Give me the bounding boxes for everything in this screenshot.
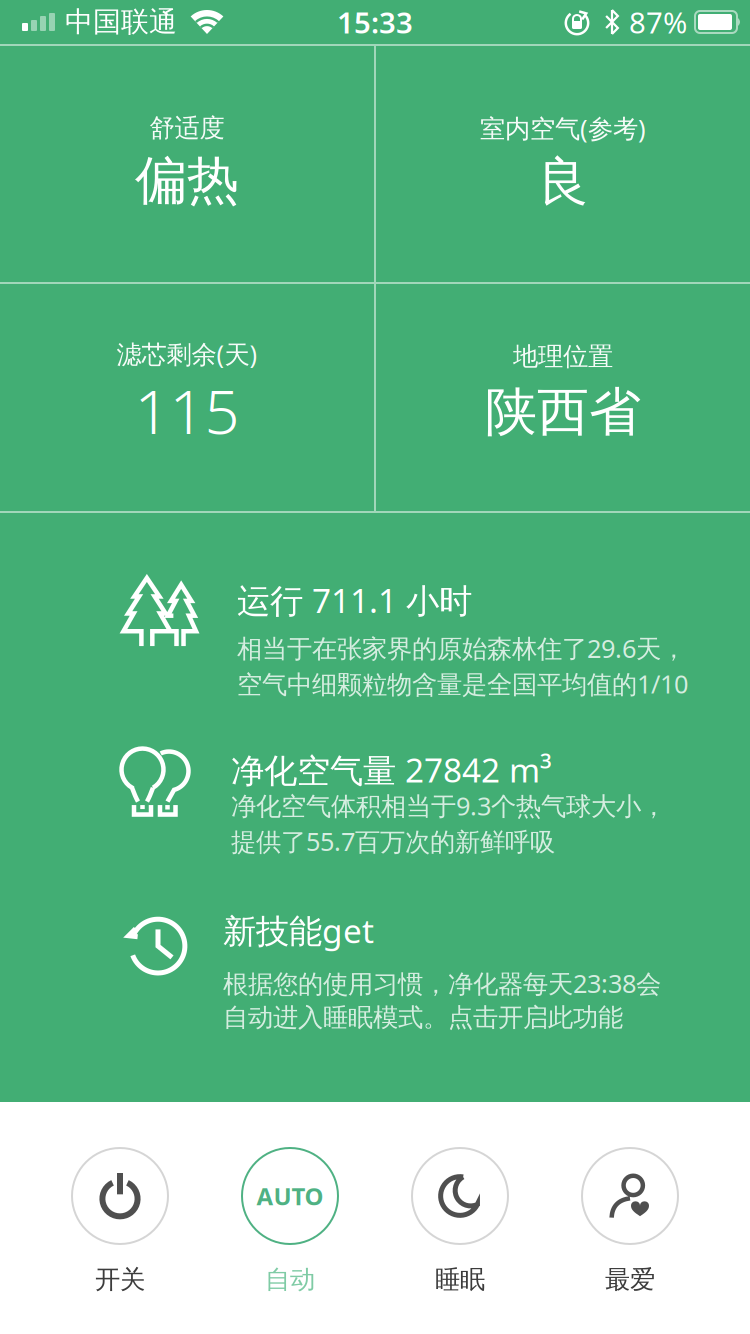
button[interactable]: 自动 xyxy=(205,1148,375,1295)
staticText: 舒适度 xyxy=(149,112,224,144)
button[interactable]: 开关 xyxy=(35,1148,205,1295)
button[interactable]: 睡眠 xyxy=(375,1148,545,1295)
staticText: 陕西省 xyxy=(485,380,641,444)
staticText: 115 xyxy=(134,370,239,451)
staticText: 新技能get xyxy=(223,908,374,952)
button[interactable]: 最爱 xyxy=(545,1148,715,1295)
button[interactable]: 新技能get xyxy=(0,908,750,1028)
staticText: AUTO xyxy=(256,1180,323,1212)
staticText: 15:33 xyxy=(337,2,413,41)
staticText: 开关 xyxy=(95,1264,145,1295)
staticText: 偏热 xyxy=(135,149,239,212)
staticText: 净化空气量 27842 m³ xyxy=(231,747,552,792)
staticText: 地理位置 xyxy=(513,341,613,372)
staticText: 最爱 xyxy=(605,1264,655,1295)
staticText: 相当于在张家界的原始森林住了29.6天， 空气中细颗粒物含量是全国平均值的1/1… xyxy=(237,631,688,701)
staticText: 滤芯剩余(天) xyxy=(116,337,257,371)
staticText: 睡眠 xyxy=(435,1264,485,1295)
staticText: 运行 711.1 小时 xyxy=(237,578,472,622)
staticText: 净化空气体积相当于9.3个热气球大小， 提供了55.7百万次的新鲜呼吸 xyxy=(231,789,666,858)
staticText: 根据您的使用习惯，净化器每天23:38会 自动进入睡眠模式。点击开启此功能 xyxy=(223,966,661,1033)
staticText: 良 xyxy=(537,150,589,214)
staticText: 室内空气(参考) xyxy=(480,111,646,145)
staticText: 中国联通 xyxy=(65,5,177,39)
staticText: 87% xyxy=(629,2,687,41)
staticText: 自动 xyxy=(265,1264,315,1295)
